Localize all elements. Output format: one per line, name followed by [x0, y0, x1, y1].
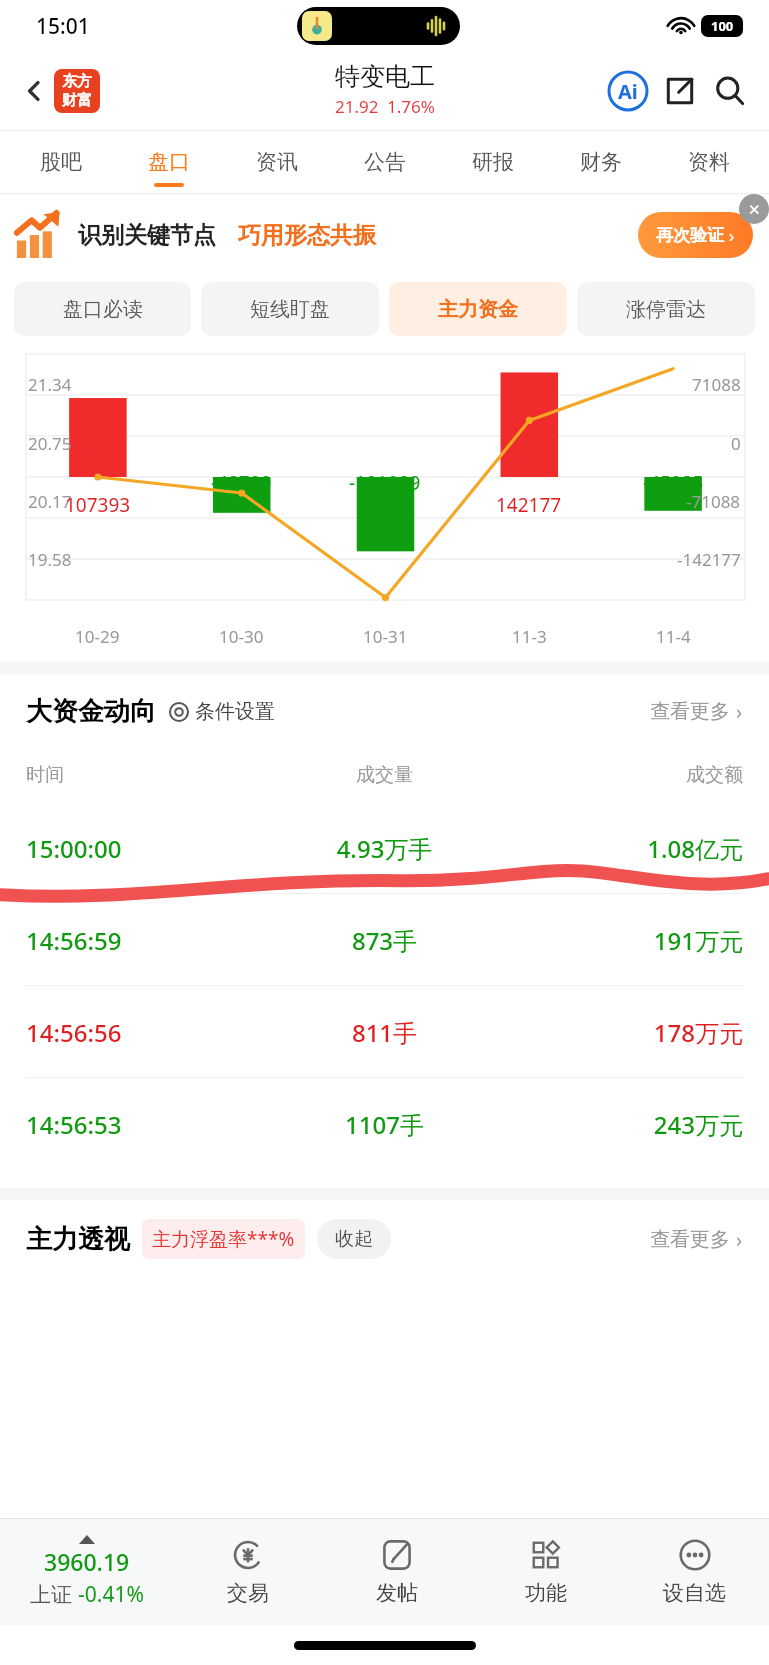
staticText: 大资金动向: [26, 695, 156, 728]
button[interactable]: 交易: [173, 1519, 322, 1625]
staticText: 短线盯盘: [250, 297, 330, 322]
button[interactable]: 研报: [439, 131, 547, 193]
staticText: ✕: [748, 201, 761, 218]
staticText: 100: [711, 17, 734, 35]
button[interactable]: 主力浮盈率***%: [152, 1219, 295, 1259]
staticText: 71088: [692, 373, 741, 396]
staticText: 查看更多: [650, 699, 730, 724]
staticText: 盘口必读: [63, 297, 143, 322]
button[interactable]: 收起: [335, 1219, 373, 1259]
button[interactable]: 股吧: [6, 131, 115, 193]
staticText: 特变电工: [335, 61, 435, 92]
button[interactable]: 14:56:59: [26, 894, 743, 986]
staticText: 873手: [265, 924, 504, 957]
button[interactable]: AI: [605, 68, 651, 114]
button[interactable]: Share: [657, 68, 703, 114]
button[interactable]: Search: [707, 68, 753, 114]
button[interactable]: 15:00:00: [26, 802, 743, 894]
staticText: 11-3: [512, 625, 547, 648]
staticText: 条件设置: [195, 699, 275, 724]
staticText: -48700: [211, 470, 272, 496]
button[interactable]: Close: [739, 194, 769, 224]
staticText: 243万元: [504, 1108, 743, 1141]
staticText: 21.92: [335, 95, 379, 118]
staticText: 10-29: [75, 625, 120, 648]
staticText: 设自选: [663, 1580, 726, 1606]
staticText: 3960.19: [44, 1546, 130, 1577]
staticText: 21.34: [28, 373, 72, 396]
staticText: Ai: [618, 78, 638, 105]
staticText: 10-30: [219, 625, 264, 648]
button[interactable]: 盘口: [115, 131, 223, 193]
staticText: 1.76%: [387, 95, 435, 118]
staticText: 0: [731, 432, 741, 454]
staticText: 15:01: [36, 12, 90, 41]
staticText: ›: [736, 1226, 743, 1253]
staticText: 资料: [688, 149, 730, 175]
button[interactable]: 公告: [331, 131, 439, 193]
staticText: 财富: [62, 91, 92, 110]
button[interactable]: 东方: [54, 69, 100, 113]
staticText: 20.75: [28, 432, 72, 454]
staticText: 107393: [65, 492, 131, 518]
button[interactable]: Back: [14, 71, 54, 111]
button[interactable]: 再次验证: [656, 212, 735, 258]
staticText: 收起: [335, 1227, 373, 1251]
staticText: 11-4: [656, 625, 691, 648]
button[interactable]: 盘口必读: [14, 282, 191, 336]
button[interactable]: 识别关键节点: [16, 194, 759, 276]
staticText: 成交量: [265, 763, 504, 787]
staticText: 盘口: [148, 149, 190, 175]
staticText: -71088: [686, 490, 741, 512]
button[interactable]: 资讯: [223, 131, 331, 193]
button[interactable]: 资料: [655, 131, 763, 193]
staticText: 14:56:56: [26, 1016, 265, 1049]
staticText: 功能: [525, 1580, 567, 1606]
staticText: 研报: [472, 149, 514, 175]
staticText: -0.41%: [78, 1580, 144, 1609]
button[interactable]: 财务: [547, 131, 655, 193]
button[interactable]: 涨停雷达: [577, 282, 755, 336]
staticText: 191万元: [504, 924, 743, 957]
staticText: 15:00:00: [26, 832, 265, 865]
staticText: 查看更多: [650, 1227, 730, 1252]
staticText: ›: [736, 698, 743, 725]
staticText: 主力资金: [438, 297, 518, 322]
staticText: -45935: [643, 470, 704, 496]
staticText: 交易: [227, 1580, 269, 1606]
staticText: 涨停雷达: [626, 297, 706, 322]
button[interactable]: 发帖: [322, 1519, 471, 1625]
staticText: 财务: [580, 149, 622, 175]
staticText: 发帖: [376, 1580, 418, 1606]
staticText: 19.58: [28, 548, 72, 570]
staticText: 资讯: [256, 149, 298, 175]
button[interactable]: 短线盯盘: [201, 282, 379, 336]
button[interactable]: 查看更多: [650, 1226, 743, 1253]
staticText: 主力浮盈率***%: [152, 1226, 295, 1252]
staticText: 东方: [62, 72, 92, 91]
staticText: 成交额: [504, 763, 743, 787]
staticText: 14:56:59: [26, 924, 265, 957]
button[interactable]: 查看更多: [650, 698, 743, 725]
button[interactable]: 条件设置: [168, 699, 275, 724]
button[interactable]: 主力资金: [389, 282, 567, 336]
staticText: 178万元: [504, 1016, 743, 1049]
staticText: 股吧: [40, 149, 82, 175]
staticText: ›: [729, 224, 735, 247]
button[interactable]: 功能: [471, 1519, 620, 1625]
button[interactable]: 14:56:53: [26, 1078, 743, 1170]
button[interactable]: 3960.19: [0, 1519, 173, 1625]
staticText: 上证: [30, 1580, 78, 1609]
staticText: 14:56:53: [26, 1108, 265, 1141]
staticText: 再次验证: [656, 225, 724, 246]
staticText: 巧用形态共振: [238, 221, 376, 250]
staticText: 142177: [496, 492, 562, 518]
staticText: 10-31: [363, 625, 408, 648]
staticText: 主力透视: [26, 1223, 130, 1256]
staticText: 4.93万手: [265, 832, 504, 865]
button[interactable]: 14:56:56: [26, 986, 743, 1078]
button[interactable]: 设自选: [620, 1519, 769, 1625]
staticText: 时间: [26, 763, 265, 787]
staticText: 识别关键节点: [78, 221, 216, 250]
staticText: 1107手: [265, 1108, 504, 1141]
